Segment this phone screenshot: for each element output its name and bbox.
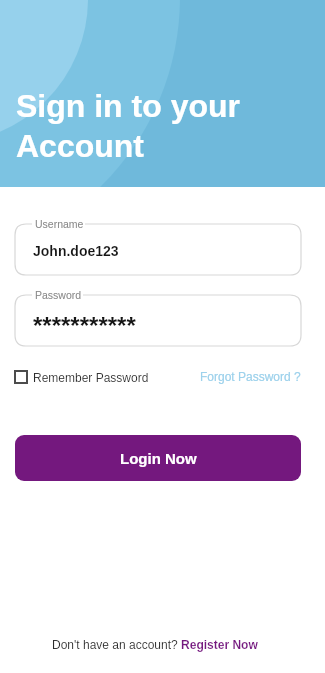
staticText: Username [35,218,84,230]
staticText: Sign in to your Account [16,88,240,164]
staticText: Don't have an account? Register Now [52,638,258,651]
staticText: Remember Password [33,371,149,384]
button[interactable]: Login Now [15,435,301,481]
staticText: *********** [33,312,136,339]
button[interactable]: Remember Password [14,370,149,384]
staticText: Password [35,289,82,301]
button[interactable]: Don't have an account? Register Now [52,638,258,651]
button[interactable]: Forgot Password ? [200,370,301,383]
staticText: Forgot Password ? [200,370,301,383]
staticText: Login Now [120,450,197,467]
staticText: John.doe123 [33,243,119,259]
